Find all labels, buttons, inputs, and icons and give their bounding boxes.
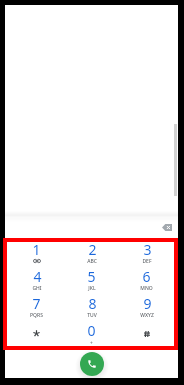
staticText: TUV (87, 312, 97, 319)
staticText: 5 (87, 267, 96, 286)
button[interactable]: 7 (9, 294, 64, 321)
staticText: DEF (142, 258, 152, 265)
staticText: WXYZ (140, 312, 154, 319)
staticText: PQRS (30, 312, 43, 319)
staticText: MNO (140, 285, 153, 292)
button[interactable]: 1 (9, 240, 64, 267)
staticText: GHI (32, 285, 42, 292)
button[interactable]: 8 (64, 294, 119, 321)
staticText: 9 (143, 294, 152, 313)
button[interactable]: Backspace (156, 217, 178, 237)
staticText: 3 (143, 240, 152, 259)
button[interactable]: 2 (64, 240, 119, 267)
button[interactable]: 0 (64, 321, 119, 348)
button[interactable]: 9 (119, 294, 174, 321)
staticText: 7 (32, 294, 41, 313)
staticText: 8 (88, 294, 97, 313)
button[interactable]: Call (80, 352, 104, 376)
button[interactable] (119, 321, 174, 348)
button[interactable]: 6 (119, 267, 174, 294)
staticText: ABC (87, 258, 97, 265)
staticText: JKL (88, 285, 96, 292)
staticText: + (90, 340, 93, 347)
button[interactable]: 3 (119, 240, 174, 267)
staticText: 4 (33, 267, 42, 286)
staticText: 1 (32, 240, 41, 259)
staticText: 6 (142, 267, 151, 286)
button[interactable] (9, 321, 64, 348)
button[interactable]: 5 (64, 267, 119, 294)
staticText: 2 (88, 240, 97, 259)
button[interactable]: 4 (9, 267, 64, 294)
staticText: 0 (87, 321, 96, 340)
